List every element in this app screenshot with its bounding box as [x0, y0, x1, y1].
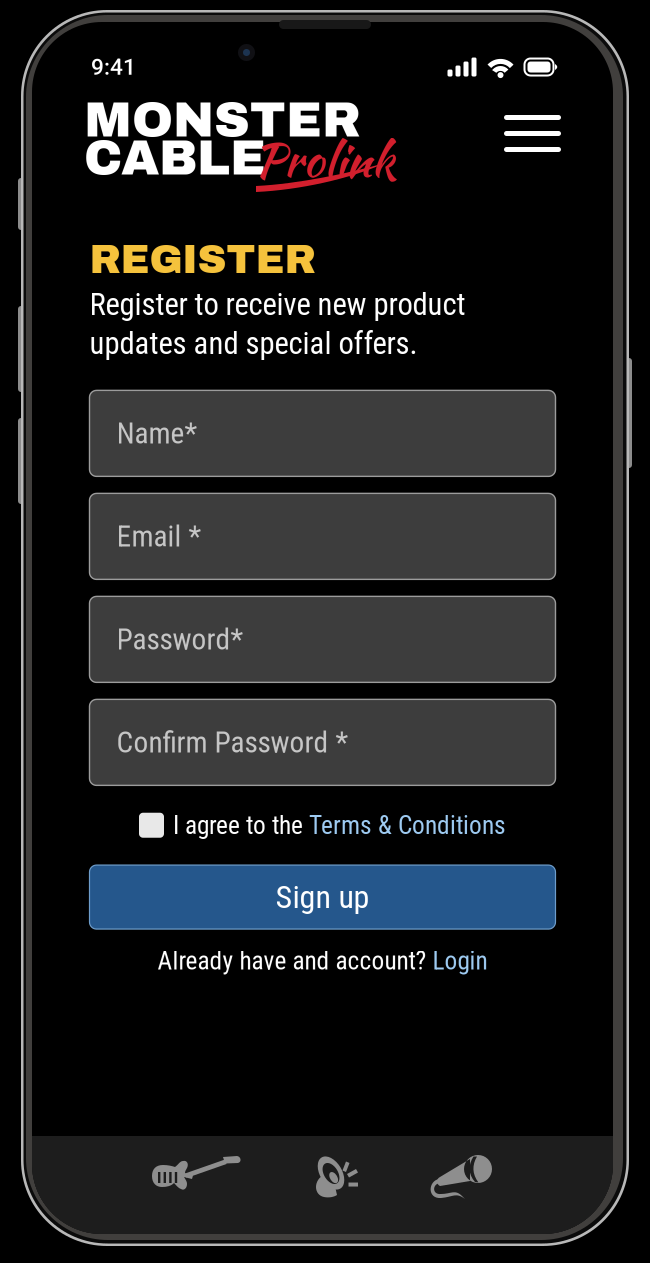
button[interactable]: Name* — [89, 390, 555, 476]
staticText: Confirm Password * — [116, 725, 348, 760]
button[interactable]: Speakers — [225, 1136, 418, 1234]
staticText: Name* — [116, 416, 197, 451]
staticText: Already have and account? — [157, 946, 432, 976]
button[interactable]: Password* — [89, 596, 555, 682]
staticText: REGISTER — [89, 238, 315, 281]
button[interactable]: Menu — [494, 101, 571, 162]
staticText: updates and special offers. — [89, 325, 417, 361]
staticText: 9:41 — [91, 54, 136, 80]
button[interactable]: Email * — [89, 493, 555, 579]
button[interactable]: Microphones — [418, 1136, 613, 1234]
staticText: Email * — [116, 519, 201, 554]
staticText: I agree to the — [173, 810, 309, 840]
staticText: Sign up — [275, 878, 369, 916]
button[interactable]: Sign up — [89, 865, 555, 929]
staticText: Register to receive new product — [89, 286, 465, 322]
staticText: CABLE — [84, 131, 266, 185]
staticText: Password* — [116, 622, 243, 657]
button[interactable]: I agree to the — [139, 800, 506, 850]
staticText: Terms & Conditions — [309, 810, 506, 840]
button[interactable]: Guitars — [32, 1136, 225, 1234]
staticText: Login — [432, 946, 487, 976]
button[interactable]: Confirm Password * — [89, 699, 555, 785]
staticText: MONSTER — [84, 93, 360, 147]
button[interactable]: Already have and account? — [157, 938, 487, 984]
staticText: Prolink — [254, 126, 395, 194]
